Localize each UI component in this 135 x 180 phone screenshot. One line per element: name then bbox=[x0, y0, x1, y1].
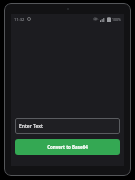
staticText: 11:32 bbox=[14, 17, 25, 22]
staticText: Convert to Base64 bbox=[47, 144, 88, 150]
staticText: 100% bbox=[112, 17, 121, 22]
button[interactable]: Enter Text bbox=[15, 118, 120, 134]
button[interactable]: Convert to Base64 bbox=[15, 139, 120, 155]
staticText: Enter Text bbox=[19, 123, 43, 130]
